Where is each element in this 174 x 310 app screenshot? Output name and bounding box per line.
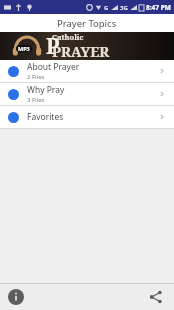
staticText: G xyxy=(104,4,109,12)
staticText: Why Pray xyxy=(27,84,65,96)
staticText: P xyxy=(46,32,60,58)
button[interactable]: Favorites xyxy=(0,106,174,128)
staticText: Prayer Topics xyxy=(57,17,117,30)
button[interactable]: Catholic Prayer banner xyxy=(0,32,174,60)
staticText: 2 Files xyxy=(27,73,45,81)
staticText: 3G xyxy=(120,4,128,12)
button[interactable]: About Prayer xyxy=(0,60,174,82)
staticText: 3 Files xyxy=(27,96,45,104)
staticText: PRAYER xyxy=(52,42,110,60)
button[interactable]: Share xyxy=(146,287,166,307)
button[interactable]: Why Pray xyxy=(0,83,174,105)
staticText: 8:47 PM xyxy=(146,3,171,12)
staticText: MP3 xyxy=(18,45,30,52)
staticText: Favorites xyxy=(27,111,64,123)
staticText: Catholic xyxy=(52,32,84,42)
staticText: About Prayer xyxy=(27,61,80,73)
button[interactable]: Info xyxy=(6,287,26,307)
